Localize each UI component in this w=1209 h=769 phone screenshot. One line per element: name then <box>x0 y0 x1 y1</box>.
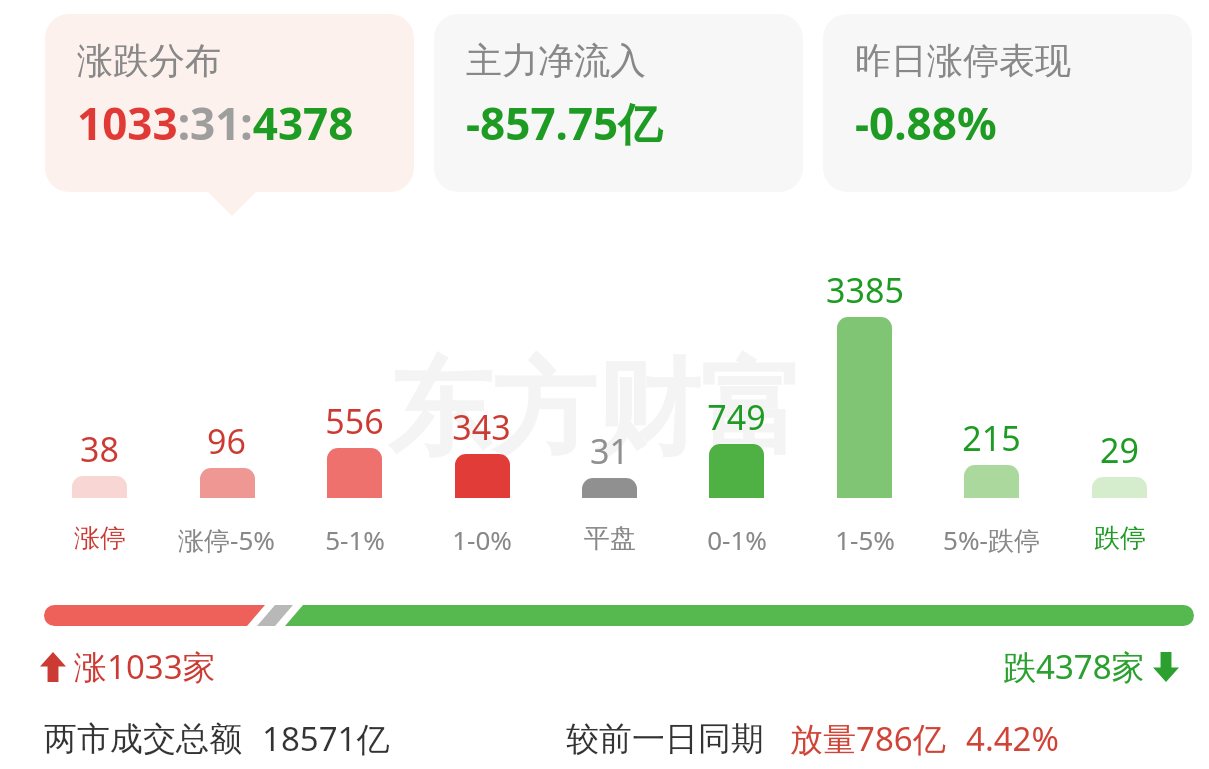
staticText: 1-5% <box>835 522 895 557</box>
staticText: 放量786亿 <box>790 716 946 761</box>
staticText: 3385 <box>826 267 904 313</box>
staticText: 涨跌分布 <box>77 38 221 83</box>
staticText: 涨1033家 <box>74 644 216 689</box>
staticText: 4.42% <box>966 716 1059 761</box>
staticText: 两市成交总额 <box>44 718 242 760</box>
other: Advancing <box>40 652 66 682</box>
staticText: 749 <box>707 394 766 440</box>
staticText: 主力净流入 <box>466 38 646 83</box>
staticText: 556 <box>325 398 384 444</box>
staticText: 5-1% <box>325 522 385 557</box>
staticText: 96 <box>207 418 246 464</box>
button[interactable] <box>44 605 1194 626</box>
staticText: 31 <box>590 428 629 474</box>
staticText: 0-1% <box>707 522 767 557</box>
staticText: -0.88% <box>855 93 997 153</box>
other: Declining <box>1153 652 1179 682</box>
staticText: 215 <box>962 415 1021 461</box>
staticText: 343 <box>452 404 511 450</box>
staticText: 1-0% <box>452 522 512 557</box>
button[interactable]: 涨跌分布 <box>45 14 414 192</box>
staticText: 较前一日同期 <box>566 718 764 760</box>
staticText: 跌停 <box>1094 522 1146 555</box>
staticText: 涨停-5% <box>178 522 275 558</box>
staticText: 平盘 <box>584 522 636 555</box>
staticText: 18571亿 <box>262 716 390 761</box>
staticText: 昨日涨停表现 <box>855 38 1071 83</box>
button[interactable]: 昨日涨停表现 <box>823 14 1192 192</box>
staticText: 1033:31:4378 <box>77 93 354 153</box>
staticText: 29 <box>1100 427 1139 473</box>
staticText: 38 <box>80 426 119 472</box>
staticText: 5%-跌停 <box>943 522 1040 558</box>
button[interactable]: 主力净流入 <box>434 14 803 192</box>
staticText: 跌4378家 <box>1003 644 1145 689</box>
staticText: -857.75亿 <box>466 93 663 153</box>
staticText: 东方财富 <box>388 344 804 475</box>
staticText: 涨停 <box>74 522 126 555</box>
